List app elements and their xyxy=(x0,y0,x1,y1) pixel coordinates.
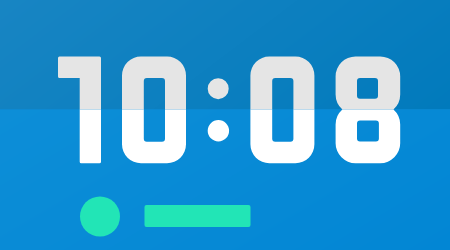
button[interactable]: Clock showing 10:08 xyxy=(0,0,450,250)
